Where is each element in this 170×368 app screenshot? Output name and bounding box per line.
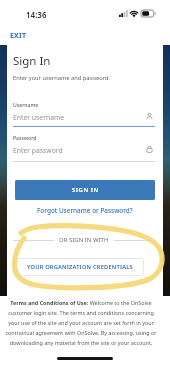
staticText: SIGN IN bbox=[72, 186, 99, 194]
staticText: EXIT bbox=[10, 31, 27, 41]
other: Password bbox=[145, 145, 154, 154]
staticText: Password bbox=[13, 135, 37, 142]
staticText: Username bbox=[13, 102, 39, 109]
staticText: Enter your username and password. bbox=[13, 74, 110, 82]
button[interactable]: YOUR ORGANIZATION CREDENTIALS bbox=[15, 258, 144, 276]
staticText: Terms and Conditions of Use: Welcome to … bbox=[5, 299, 157, 347]
staticText: Enter username bbox=[13, 113, 65, 122]
staticText: Enter password bbox=[13, 146, 63, 155]
staticText: OR SIGN IN WITH bbox=[59, 236, 109, 244]
staticText: Sign In bbox=[13, 53, 51, 69]
button[interactable]: Forgot Username or Password? bbox=[37, 206, 133, 215]
staticText: Forgot Username or Password? bbox=[37, 206, 133, 215]
button[interactable]: SIGN IN bbox=[15, 180, 155, 200]
button[interactable]: EXIT bbox=[10, 31, 27, 41]
other: Username bbox=[145, 112, 154, 121]
staticText: 14:36 bbox=[26, 9, 47, 20]
staticText: YOUR ORGANIZATION CREDENTIALS bbox=[27, 263, 133, 271]
